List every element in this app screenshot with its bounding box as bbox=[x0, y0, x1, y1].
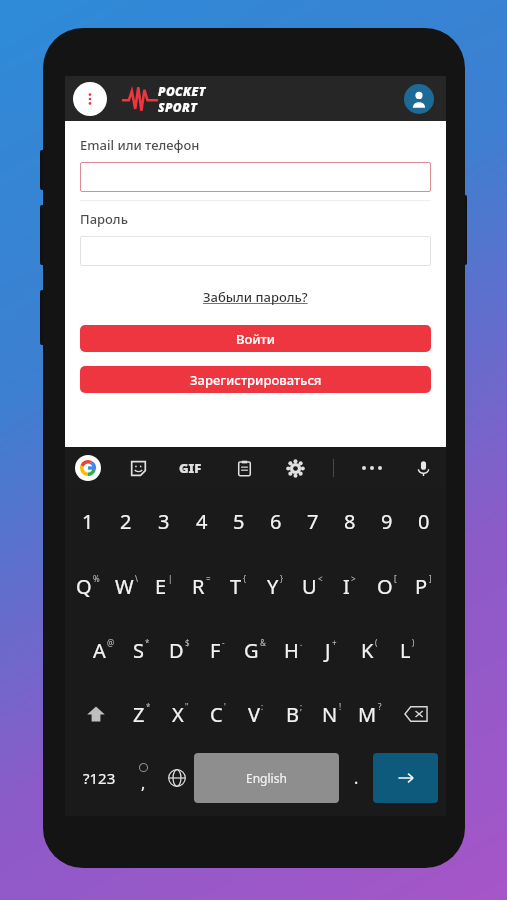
button[interactable]: L bbox=[388, 618, 426, 682]
button[interactable]: R bbox=[183, 554, 220, 618]
staticText: S bbox=[133, 637, 144, 664]
button[interactable] bbox=[80, 236, 431, 266]
button[interactable]: Settings bbox=[282, 455, 308, 481]
button[interactable]: 1 bbox=[69, 489, 107, 554]
button[interactable]: Comma bbox=[126, 746, 160, 810]
button[interactable]: O bbox=[368, 554, 405, 618]
button[interactable]: Backspace bbox=[389, 682, 442, 746]
staticText: < bbox=[318, 573, 323, 584]
button[interactable]: 7 bbox=[294, 489, 331, 554]
button[interactable]: T bbox=[220, 554, 257, 618]
button[interactable] bbox=[80, 162, 431, 192]
staticText: : bbox=[261, 701, 264, 712]
staticText: X bbox=[172, 701, 184, 728]
button[interactable]: Google search bbox=[75, 455, 101, 481]
button[interactable]: B bbox=[275, 682, 313, 746]
button[interactable]: U bbox=[294, 554, 331, 618]
staticText: 1 bbox=[82, 508, 94, 535]
button[interactable]: V bbox=[237, 682, 275, 746]
staticText: 0 bbox=[418, 508, 430, 535]
button[interactable]: X bbox=[161, 682, 199, 746]
button[interactable]: Забыли пароль? bbox=[203, 288, 308, 306]
button[interactable]: 3 bbox=[145, 489, 183, 554]
staticText: , bbox=[141, 772, 146, 794]
button[interactable]: P bbox=[405, 554, 442, 618]
button[interactable]: Shift bbox=[69, 682, 123, 746]
button[interactable]: F bbox=[198, 618, 236, 682]
button[interactable]: C bbox=[199, 682, 237, 746]
button[interactable]: N bbox=[313, 682, 351, 746]
staticText: 6 bbox=[270, 508, 282, 535]
staticText: | bbox=[168, 573, 173, 584]
button[interactable]: 9 bbox=[368, 489, 405, 554]
staticText: . bbox=[300, 637, 303, 648]
staticText: B bbox=[286, 701, 299, 728]
staticText: % bbox=[93, 573, 100, 584]
staticText: ) bbox=[412, 637, 415, 648]
button[interactable]: Change language bbox=[160, 746, 194, 810]
button[interactable]: Enter bbox=[373, 753, 438, 803]
staticText: K bbox=[361, 637, 374, 664]
staticText: POCKET bbox=[158, 83, 206, 99]
staticText: E bbox=[155, 573, 167, 600]
staticText: L bbox=[400, 637, 411, 664]
button[interactable]: Profile bbox=[404, 84, 434, 114]
staticText: ( bbox=[375, 637, 378, 648]
staticText: N bbox=[322, 701, 338, 728]
button[interactable]: I bbox=[331, 554, 368, 618]
button[interactable]: English bbox=[194, 753, 339, 803]
button[interactable]: Q bbox=[69, 554, 107, 618]
staticText: Z bbox=[133, 701, 145, 728]
staticText: Зарегистрироваться bbox=[190, 371, 322, 389]
button[interactable]: E bbox=[145, 554, 183, 618]
staticText: 4 bbox=[196, 508, 208, 535]
button[interactable]: Войти bbox=[80, 325, 431, 352]
staticText: M bbox=[358, 701, 377, 728]
staticText: 3 bbox=[158, 508, 170, 535]
staticText: D bbox=[169, 637, 184, 664]
button[interactable]: Clipboard bbox=[231, 455, 257, 481]
button[interactable]: D bbox=[160, 618, 198, 682]
staticText: - bbox=[222, 637, 225, 648]
staticText: ?123 bbox=[83, 768, 116, 788]
staticText: @ bbox=[107, 637, 115, 648]
staticText: * bbox=[145, 637, 150, 648]
button[interactable]: More bbox=[359, 455, 385, 481]
staticText: Email или телефон bbox=[80, 136, 200, 154]
button[interactable]: 0 bbox=[405, 489, 442, 554]
button[interactable]: Voice input bbox=[410, 455, 436, 481]
button[interactable]: A bbox=[85, 618, 122, 682]
button[interactable]: M bbox=[351, 682, 389, 746]
staticText: 9 bbox=[381, 508, 393, 535]
staticText: 8 bbox=[344, 508, 356, 535]
button[interactable]: Stickers bbox=[125, 455, 151, 481]
button[interactable]: GIF bbox=[175, 455, 206, 481]
staticText: 2 bbox=[120, 508, 132, 535]
staticText: G bbox=[244, 637, 259, 664]
button[interactable]: G bbox=[236, 618, 274, 682]
button[interactable]: W bbox=[107, 554, 145, 618]
button[interactable]: S bbox=[122, 618, 160, 682]
staticText: GIF bbox=[179, 459, 202, 477]
staticText: } bbox=[280, 573, 284, 584]
button[interactable]: H bbox=[274, 618, 312, 682]
button[interactable]: Z bbox=[123, 682, 161, 746]
staticText: { bbox=[243, 573, 247, 584]
button[interactable]: ?123 bbox=[73, 746, 126, 810]
button[interactable]: More options bbox=[73, 82, 107, 116]
button[interactable]: Y bbox=[257, 554, 294, 618]
button[interactable]: 6 bbox=[257, 489, 294, 554]
staticText: 5 bbox=[233, 508, 245, 535]
button[interactable]: 5 bbox=[220, 489, 257, 554]
button[interactable]: 8 bbox=[331, 489, 368, 554]
button[interactable]: Зарегистрироваться bbox=[80, 366, 431, 393]
button[interactable]: K bbox=[350, 618, 388, 682]
staticText: O bbox=[377, 573, 393, 600]
button[interactable]: J bbox=[312, 618, 350, 682]
button[interactable]: 2 bbox=[107, 489, 145, 554]
staticText: J bbox=[325, 637, 331, 664]
staticText: * bbox=[146, 701, 151, 712]
staticText: Войти bbox=[236, 330, 276, 348]
button[interactable]: Period bbox=[339, 746, 373, 810]
button[interactable]: 4 bbox=[183, 489, 220, 554]
